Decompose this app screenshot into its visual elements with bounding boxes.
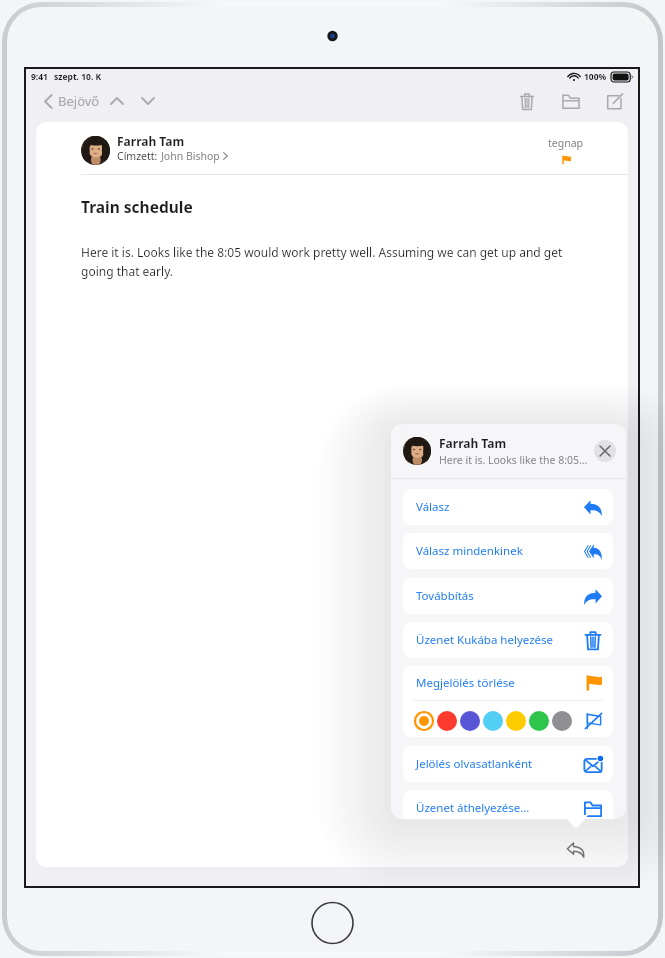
- staticText: Here it is. Looks like the 8:05 would wo…: [81, 244, 586, 279]
- button[interactable]: Compose: [601, 88, 627, 114]
- staticText: Farrah Tam: [439, 435, 507, 451]
- button[interactable]: Továbbítás: [403, 578, 613, 614]
- button[interactable]: Bejövő: [44, 92, 100, 110]
- staticText: Bejövő: [58, 92, 100, 110]
- staticText: Megjelölés törlése: [416, 675, 515, 691]
- button[interactable]: Previous message: [106, 90, 128, 112]
- button[interactable]: Üzenet Kukába helyezése: [403, 622, 613, 658]
- staticText: Üzenet áthelyezése…: [416, 800, 530, 816]
- button[interactable]: Delete: [514, 88, 540, 114]
- staticText: Válasz mindenkinek: [416, 543, 523, 559]
- staticText: John Bishop: [161, 149, 220, 163]
- button[interactable]: Close: [594, 440, 616, 462]
- staticText: Train schedule: [81, 196, 193, 217]
- staticText: Jelölés olvasatlanként: [416, 756, 533, 772]
- button[interactable]: Válasz mindenkinek: [403, 533, 613, 569]
- staticText: Farrah Tam: [117, 133, 185, 149]
- button[interactable]: Üzenet áthelyezése…: [403, 790, 613, 819]
- staticText: tegnap: [548, 136, 584, 150]
- button[interactable]: Megjelölés törlése: [403, 666, 613, 700]
- button[interactable]: Flag colour: [460, 711, 480, 731]
- staticText: Válasz: [416, 499, 450, 515]
- button[interactable]: Válasz: [403, 489, 613, 525]
- button[interactable]: Move to folder: [558, 88, 584, 114]
- staticText: Here it is. Looks like the 8:05…: [439, 453, 588, 467]
- staticText: Üzenet Kukába helyezése: [416, 632, 554, 648]
- staticText: 100%: [584, 71, 607, 83]
- button[interactable]: Reply: [561, 834, 591, 864]
- button[interactable]: Next message: [137, 90, 159, 112]
- staticText: 9:41: [31, 71, 48, 83]
- button[interactable]: Flag colour: [529, 711, 549, 731]
- button[interactable]: Flag colour: [506, 711, 526, 731]
- staticText: Továbbítás: [416, 588, 474, 604]
- staticText: Címzett:: [117, 149, 158, 163]
- button[interactable]: Flag colour: [414, 711, 434, 731]
- staticText: szept. 10. K: [54, 71, 102, 83]
- button[interactable]: Jelölés olvasatlanként: [403, 746, 613, 782]
- button[interactable]: Flag colour: [552, 711, 572, 731]
- button[interactable]: Flag colour: [483, 711, 503, 731]
- button[interactable]: Flag colour: [437, 711, 457, 731]
